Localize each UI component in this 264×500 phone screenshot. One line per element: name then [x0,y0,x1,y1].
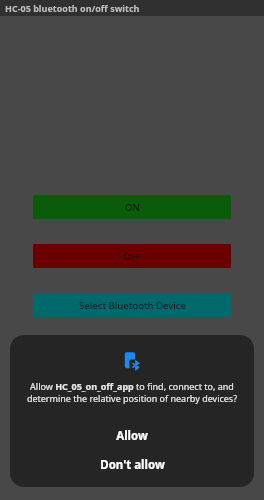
button[interactable]: Allow [10,426,254,446]
staticText: Select Bluetooth Device [79,299,186,312]
button[interactable]: Select Bluetooth Device [33,293,231,317]
staticText: HC-05 bluetooth on/off switch [5,2,140,14]
staticText: Don't allow [100,457,165,473]
staticText: ON [125,201,140,214]
staticText: Allow [116,428,148,444]
button[interactable]: OFF [33,244,231,268]
other: Nearby devices permission [122,351,142,371]
button[interactable]: Don't allow [10,455,254,475]
button[interactable]: ON [33,195,231,219]
staticText: OFF [123,250,141,263]
staticText: Allow HC_05_on_off_app to find, connect … [24,380,240,405]
